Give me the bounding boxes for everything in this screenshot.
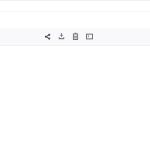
button[interactable]: Copy	[68, 28, 82, 45]
button[interactable]: Download	[54, 28, 68, 45]
button[interactable]: Share	[40, 28, 54, 45]
button[interactable]: Open in new window	[82, 28, 96, 45]
